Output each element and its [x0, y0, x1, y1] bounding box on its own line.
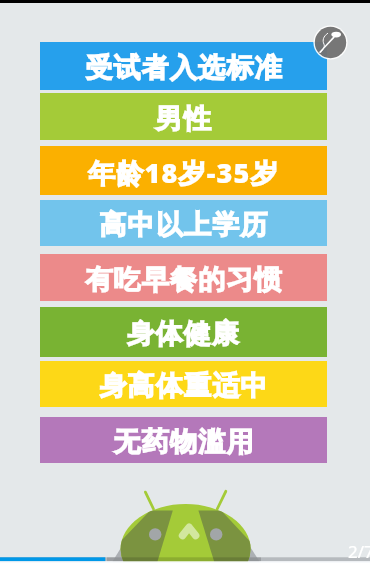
staticText: 年龄18岁-35岁 [88, 154, 279, 191]
staticText: 有吃早餐的习惯 [85, 263, 283, 297]
button[interactable]: 受试者入选标准 [40, 42, 327, 90]
button[interactable]: Brush [313, 25, 348, 60]
staticText: 男性 [155, 102, 212, 136]
button[interactable]: 高中以上学历 [40, 200, 327, 246]
button[interactable]: 男性 [40, 93, 327, 140]
staticText: 高中以上学历 [99, 208, 269, 242]
staticText: 2/7 [348, 540, 370, 563]
button[interactable]: 无药物滥用 [40, 417, 327, 463]
staticText: 身体健康 [127, 317, 240, 351]
staticText: 受试者入选标准 [85, 51, 283, 85]
button[interactable]: 身体健康 [40, 307, 327, 357]
staticText: 身高体重适中 [99, 369, 269, 403]
button[interactable]: 有吃早餐的习惯 [40, 254, 327, 301]
staticText: 无药物滥用 [113, 425, 254, 459]
button[interactable]: 身高体重适中 [40, 361, 327, 407]
button[interactable]: 年龄18岁-35岁 [40, 146, 327, 195]
